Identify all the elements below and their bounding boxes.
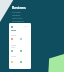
staticText: Reviews [12,5,26,10]
staticText: Trusted reviews from real customers [12,10,25,22]
